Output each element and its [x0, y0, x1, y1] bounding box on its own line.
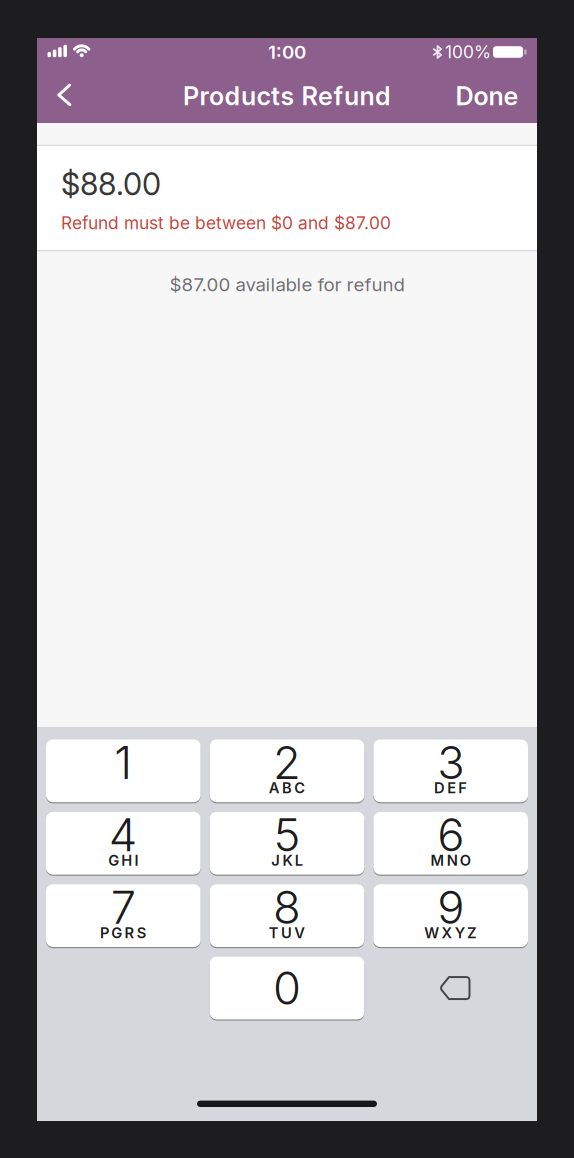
- staticText: I: [134, 852, 138, 869]
- staticText: K: [282, 852, 292, 869]
- staticText: Products Refund: [183, 81, 391, 111]
- button[interactable]: [378, 957, 532, 1019]
- button[interactable]: 2: [210, 739, 364, 802]
- staticText: 8: [273, 880, 301, 934]
- staticText: 1: [114, 736, 132, 789]
- staticText: 7: [111, 880, 136, 934]
- staticText: F: [458, 779, 467, 797]
- staticText: 2: [273, 736, 301, 789]
- staticText: 1:00: [268, 41, 306, 63]
- staticText: R: [124, 924, 134, 941]
- staticText: E: [447, 779, 456, 797]
- staticText: 5: [273, 808, 300, 862]
- staticText: 6: [437, 808, 464, 862]
- staticText: Done: [455, 81, 518, 111]
- staticText: O: [460, 852, 471, 869]
- staticText: H: [121, 852, 132, 869]
- staticText: P: [100, 924, 109, 941]
- button[interactable]: 3: [373, 739, 528, 802]
- button[interactable]: 8: [210, 884, 364, 947]
- staticText: B: [282, 779, 292, 797]
- staticText: G: [111, 924, 122, 941]
- staticText: W: [424, 924, 439, 941]
- button[interactable]: 4: [46, 812, 201, 875]
- staticText: G: [108, 852, 119, 869]
- staticText: Y: [455, 924, 465, 941]
- button[interactable]: 6: [373, 812, 528, 875]
- button[interactable]: [37, 65, 93, 123]
- button[interactable]: 9: [373, 884, 528, 947]
- staticText: S: [137, 924, 147, 941]
- staticText: $87.00 available for refund: [169, 273, 404, 295]
- staticText: 9: [437, 880, 464, 934]
- button[interactable]: 1: [46, 739, 201, 802]
- staticText: X: [442, 924, 453, 941]
- staticText: Refund must be between $0 and $87.00: [61, 213, 391, 233]
- staticText: U: [281, 924, 292, 941]
- button[interactable]: 0: [210, 957, 364, 1019]
- staticText: N: [447, 852, 458, 869]
- staticText: V: [294, 924, 305, 941]
- staticText: Z: [467, 924, 477, 941]
- staticText: C: [294, 779, 305, 797]
- button[interactable]: 5: [210, 812, 364, 875]
- staticText: 3: [437, 736, 464, 789]
- staticText: 0: [273, 961, 301, 1015]
- staticText: $88.00: [61, 166, 161, 202]
- staticText: L: [295, 852, 303, 869]
- staticText: T: [269, 924, 279, 941]
- button[interactable]: Done: [447, 67, 527, 125]
- staticText: D: [434, 779, 445, 797]
- staticText: M: [430, 852, 444, 869]
- staticText: 4: [109, 808, 138, 862]
- staticText: A: [269, 779, 280, 797]
- staticText: J: [271, 852, 280, 869]
- button[interactable]: 7: [46, 884, 201, 947]
- staticText: 100%: [445, 42, 491, 62]
